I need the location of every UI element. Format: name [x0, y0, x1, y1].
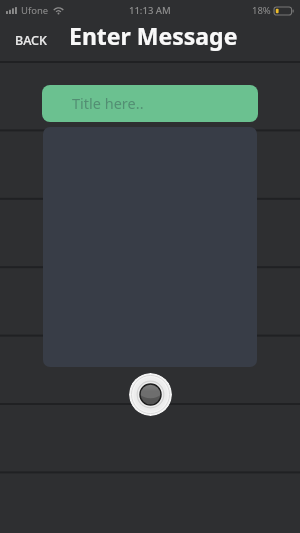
- button[interactable]: Title here..: [42, 85, 258, 122]
- staticText: 11:13 AM: [129, 4, 171, 17]
- staticText: Enter Message: [69, 20, 238, 51]
- staticText: 18%: [252, 4, 271, 17]
- button[interactable]: BACK: [9, 28, 53, 53]
- button[interactable]: Record: [129, 373, 172, 416]
- staticText: Ufone: [21, 4, 49, 17]
- staticText: Title here..: [72, 93, 144, 113]
- staticText: BACK: [15, 32, 47, 49]
